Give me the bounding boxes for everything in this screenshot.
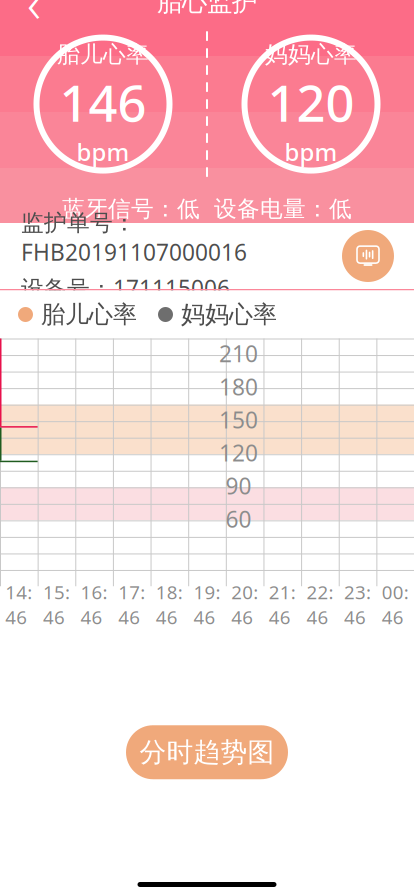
button[interactable]: 返回	[12, 0, 56, 24]
staticText: 210	[219, 338, 258, 369]
staticText: 19:46	[193, 580, 220, 629]
staticText: 结束	[238, 248, 292, 281]
button[interactable]: 分时趋势图	[126, 725, 288, 779]
staticText: 14:48:38	[111, 247, 215, 283]
staticText: bpm	[76, 136, 129, 168]
staticText: bpm	[284, 136, 337, 168]
staticText: 胎儿心率	[57, 41, 149, 68]
staticText: 23:46	[344, 580, 371, 629]
staticText: 监护单号：FHB20191107000016	[21, 209, 247, 267]
staticText: ‹	[27, 0, 41, 37]
staticText: 90	[225, 471, 251, 501]
staticText: 00:46	[382, 580, 409, 629]
staticText: 胎儿心率	[41, 300, 137, 329]
staticText: 蓝牙信号：低 设备电量：低	[62, 195, 352, 223]
staticText: 14:46	[5, 580, 32, 629]
staticText: 120	[219, 438, 258, 468]
staticText: 180	[219, 372, 258, 402]
button[interactable]: 查看监护曲线	[340, 228, 396, 284]
staticText: 分时趋势图	[139, 736, 274, 769]
staticText: 妈妈心率	[181, 300, 277, 329]
staticText: 妈妈心率	[265, 41, 357, 68]
staticText: 22:46	[306, 580, 333, 629]
staticText: 21:46	[269, 580, 296, 629]
staticText: 60	[225, 504, 251, 534]
staticText: 胎心监护	[157, 0, 257, 18]
staticText: 18:46	[156, 580, 183, 629]
staticText: 20:46	[231, 580, 258, 629]
staticText: 15:46	[43, 580, 70, 629]
button[interactable]: 结束	[221, 242, 309, 288]
staticText: 120	[267, 68, 354, 136]
staticText: 150	[219, 405, 258, 435]
staticText: 146	[59, 68, 146, 136]
staticText: 设备号：171115006	[21, 273, 230, 303]
staticText: 17:46	[118, 580, 145, 629]
staticText: 16:46	[81, 580, 108, 629]
